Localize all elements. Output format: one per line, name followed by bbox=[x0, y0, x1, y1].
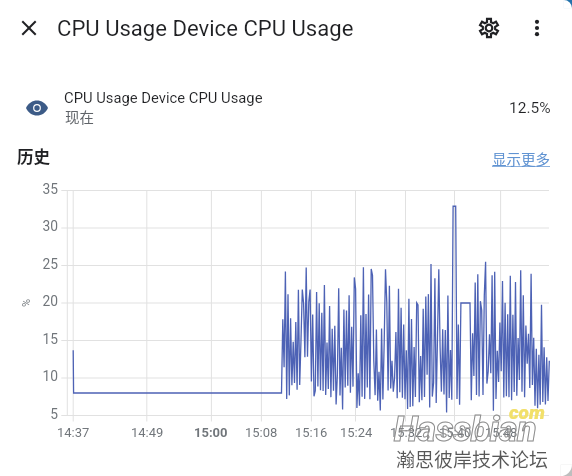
staticText: CPU Usage Device CPU Usage bbox=[64, 89, 263, 106]
staticText: 35 bbox=[42, 181, 58, 197]
staticText: 10 bbox=[42, 368, 58, 384]
staticText: 15:48 bbox=[485, 425, 518, 440]
staticText: 现在 bbox=[65, 106, 94, 127]
staticText: 历史 bbox=[17, 144, 51, 168]
staticText: 14:37 bbox=[57, 425, 90, 440]
staticText: 瀚思彼岸技术论坛 bbox=[396, 445, 549, 473]
staticText: 15:24 bbox=[340, 425, 373, 440]
staticText: CPU Usage Device CPU Usage bbox=[57, 15, 354, 41]
staticText: 15:32 bbox=[390, 425, 423, 440]
staticText: 12.5% bbox=[509, 99, 551, 117]
button[interactable]: Settings bbox=[465, 0, 513, 56]
staticText: 15:40 bbox=[439, 425, 472, 440]
staticText: 30 bbox=[42, 218, 58, 234]
staticText: 20 bbox=[42, 293, 58, 309]
staticText: Hassbian bbox=[394, 409, 537, 450]
button[interactable]: 显示更多 bbox=[492, 148, 550, 169]
staticText: 显示更多 bbox=[492, 148, 550, 169]
staticText: 5 bbox=[50, 406, 58, 422]
staticText: 15:00 bbox=[194, 425, 228, 440]
staticText: 15 bbox=[42, 331, 58, 347]
button[interactable]: Close bbox=[5, 0, 53, 56]
staticText: 14:49 bbox=[131, 425, 164, 440]
staticText: % bbox=[20, 298, 33, 307]
button[interactable]: More options bbox=[513, 0, 561, 56]
staticText: 15:16 bbox=[295, 425, 328, 440]
staticText: 25 bbox=[42, 256, 58, 272]
staticText: com bbox=[509, 401, 545, 423]
staticText: 15:08 bbox=[245, 425, 278, 440]
